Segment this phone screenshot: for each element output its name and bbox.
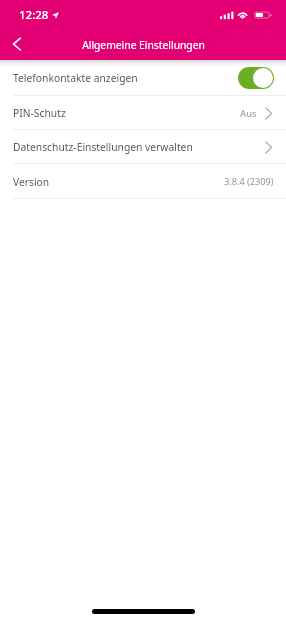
- button[interactable]: Zurück: [0, 28, 35, 59]
- button[interactable]: Version: [0, 164, 286, 199]
- staticText: Version: [13, 175, 50, 189]
- button[interactable]: Telefonkontakte anzeigen umschalten: [238, 67, 274, 89]
- staticText: 12:28: [19, 7, 49, 23]
- staticText: PIN-Schutz: [13, 106, 66, 120]
- staticText: Aus: [240, 107, 257, 120]
- button[interactable]: Datenschutz-Einstellungen verwalten: [0, 130, 286, 164]
- staticText: Allgemeine Einstellungen: [82, 38, 205, 52]
- staticText: Datenschutz-Einstellungen verwalten: [13, 140, 193, 154]
- button[interactable]: PIN-Schutz: [0, 96, 286, 130]
- staticText: Telefonkontakte anzeigen: [13, 71, 138, 85]
- staticText: 3.8.4 (2309): [224, 175, 274, 188]
- button[interactable]: Telefonkontakte anzeigen: [0, 60, 286, 96]
